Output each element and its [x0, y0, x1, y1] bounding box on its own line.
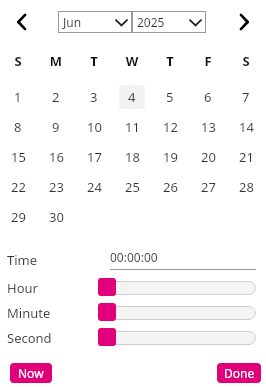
staticText: 20 — [201, 148, 216, 166]
staticText: 7 — [242, 88, 250, 106]
staticText: 23 — [49, 178, 64, 196]
button[interactable]: 29 — [5, 205, 31, 229]
staticText: 25 — [125, 178, 140, 196]
staticText: 1 — [14, 88, 22, 106]
button[interactable]: 10 — [81, 115, 107, 139]
button[interactable]: 2025 — [132, 11, 206, 33]
staticText: 14 — [239, 118, 254, 136]
staticText: 18 — [125, 148, 140, 166]
button[interactable]: 21 — [233, 145, 259, 169]
staticText: Second — [7, 329, 52, 347]
staticText: 2025 — [137, 14, 165, 30]
staticText: 5 — [166, 88, 174, 106]
button[interactable]: 22 — [5, 175, 31, 199]
button[interactable] — [100, 306, 256, 320]
button[interactable]: 20 — [195, 145, 221, 169]
button[interactable]: 17 — [81, 145, 107, 169]
staticText: 4 — [128, 88, 136, 106]
button[interactable]: 14 — [233, 115, 259, 139]
staticText: 24 — [87, 178, 102, 196]
button[interactable]: Hour slider thumb — [98, 278, 116, 296]
staticText: 15 — [11, 148, 26, 166]
button[interactable] — [100, 281, 256, 295]
button[interactable]: 1 — [5, 85, 31, 109]
button[interactable]: Now — [10, 363, 52, 383]
staticText: F — [198, 52, 218, 70]
button[interactable]: 9 — [43, 115, 69, 139]
button[interactable]: 24 — [81, 175, 107, 199]
button[interactable] — [100, 331, 256, 345]
staticText: 2 — [52, 88, 60, 106]
button[interactable]: 25 — [119, 175, 145, 199]
button[interactable]: 2 — [43, 85, 69, 109]
staticText: S — [236, 52, 256, 70]
staticText: 29 — [11, 208, 26, 226]
button[interactable]: Next month — [227, 7, 261, 37]
staticText: 6 — [204, 88, 212, 106]
staticText: 30 — [49, 208, 64, 226]
button[interactable]: Second slider thumb — [98, 328, 116, 346]
staticText: 19 — [163, 148, 178, 166]
staticText: 22 — [11, 178, 26, 196]
staticText: Time — [7, 251, 38, 269]
button[interactable]: 5 — [157, 85, 183, 109]
staticText: W — [122, 52, 142, 70]
button[interactable]: 23 — [43, 175, 69, 199]
button[interactable]: 6 — [195, 85, 221, 109]
button[interactable]: 12 — [157, 115, 183, 139]
staticText: Now — [18, 365, 44, 381]
button[interactable]: 26 — [157, 175, 183, 199]
button[interactable]: Previous month — [5, 7, 39, 37]
staticText: 26 — [163, 178, 178, 196]
staticText: 28 — [239, 178, 254, 196]
button[interactable]: Done — [217, 363, 261, 383]
button[interactable]: Jun — [58, 11, 132, 33]
staticText: 16 — [49, 148, 64, 166]
staticText: 11 — [125, 118, 140, 136]
staticText: M — [46, 52, 66, 70]
staticText: 8 — [14, 118, 22, 136]
button[interactable]: 30 — [43, 205, 69, 229]
staticText: 13 — [201, 118, 216, 136]
button[interactable]: 15 — [5, 145, 31, 169]
staticText: Minute — [7, 304, 51, 322]
staticText: 10 — [87, 118, 102, 136]
staticText: 3 — [90, 88, 98, 106]
staticText: 12 — [163, 118, 178, 136]
staticText: 17 — [87, 148, 102, 166]
button[interactable]: 19 — [157, 145, 183, 169]
button[interactable]: 3 — [81, 85, 107, 109]
button[interactable]: 8 — [5, 115, 31, 139]
staticText: T — [160, 52, 180, 70]
button[interactable]: 11 — [119, 115, 145, 139]
button[interactable]: 18 — [119, 145, 145, 169]
button[interactable]: 28 — [233, 175, 259, 199]
staticText: Done — [224, 365, 255, 381]
staticText: 9 — [52, 118, 60, 136]
button[interactable]: Minute slider thumb — [98, 303, 116, 321]
staticText: 21 — [239, 148, 254, 166]
button[interactable]: 16 — [43, 145, 69, 169]
button[interactable]: 4 — [119, 85, 145, 109]
button[interactable]: 00:00:00 — [110, 248, 256, 270]
button[interactable]: 27 — [195, 175, 221, 199]
staticText: 27 — [201, 178, 216, 196]
button[interactable]: 7 — [233, 85, 259, 109]
staticText: S — [8, 52, 28, 70]
staticText: T — [84, 52, 104, 70]
button[interactable]: 13 — [195, 115, 221, 139]
staticText: 00:00:00 — [110, 249, 158, 265]
staticText: Jun — [63, 14, 82, 30]
staticText: Hour — [7, 279, 38, 297]
